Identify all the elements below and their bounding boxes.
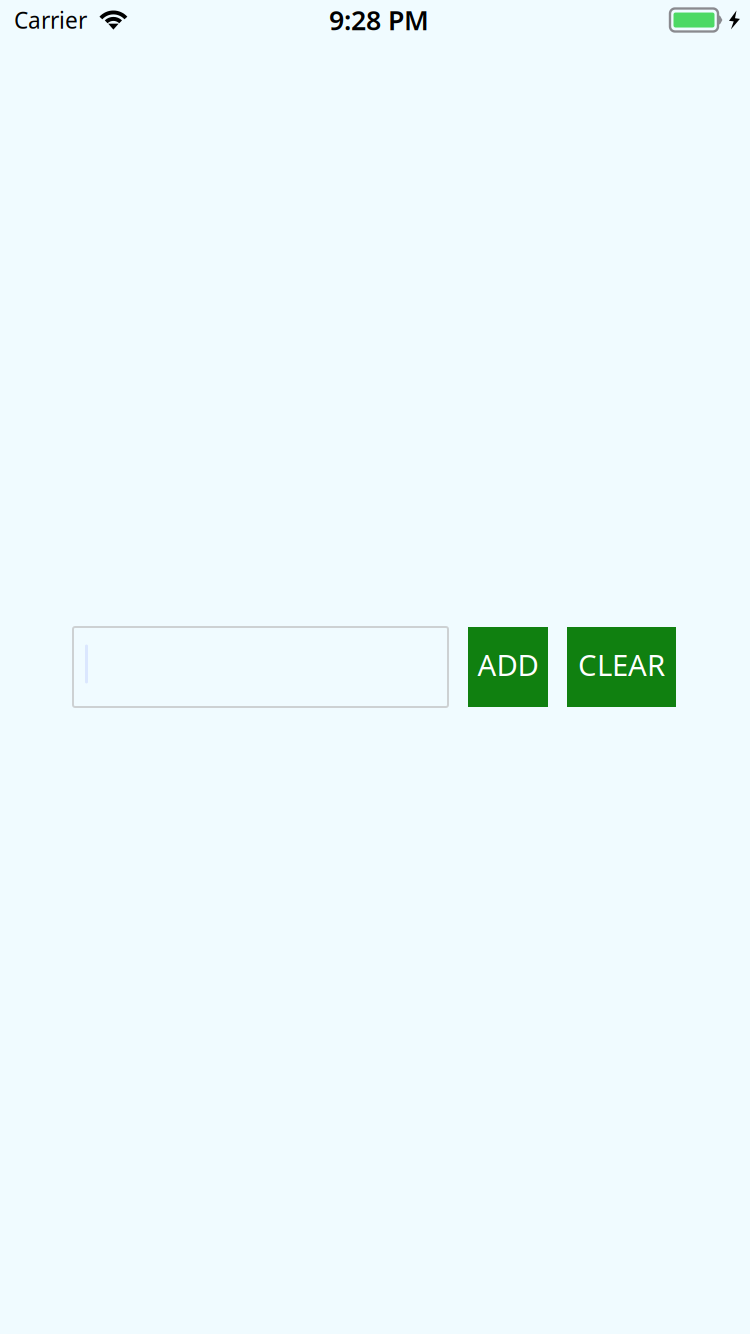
button[interactable]: CLEAR [567,627,676,707]
staticText: CLEAR [578,645,665,684]
button[interactable]: ADD [468,627,548,707]
staticText: 9:28 PM [329,2,429,38]
staticText: ADD [477,645,538,684]
button[interactable]: Item text field [73,627,448,707]
staticText: Carrier [14,5,87,35]
